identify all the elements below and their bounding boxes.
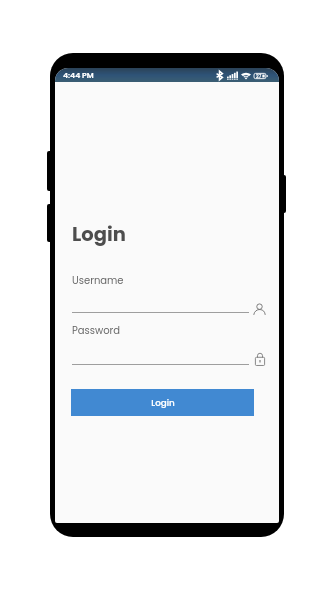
other: Password: [255, 353, 265, 366]
staticText: Login: [72, 221, 126, 248]
other: Username: [253, 303, 266, 316]
staticText: Login: [151, 397, 175, 409]
button[interactable]: Login: [71, 389, 254, 416]
staticText: 4:44 PM: [63, 70, 94, 81]
button[interactable]: Password: [72, 319, 263, 365]
button[interactable]: Username: [72, 269, 263, 315]
staticText: Username: [72, 273, 124, 287]
staticText: Password: [72, 323, 121, 337]
staticText: 27: [256, 73, 262, 79]
